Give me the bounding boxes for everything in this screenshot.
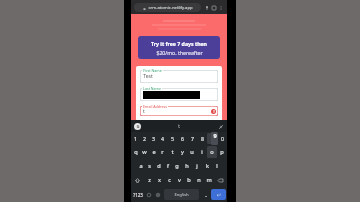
- button[interactable]: j: [192, 160, 202, 172]
- staticText: 9: [211, 135, 214, 142]
- button[interactable]: Shift: [131, 173, 144, 187]
- staticText: 6: [181, 135, 184, 142]
- staticText: q: [134, 148, 138, 156]
- staticText: t: [171, 148, 174, 156]
- staticText: l: [216, 162, 218, 170]
- button[interactable]: m: [204, 174, 214, 186]
- button[interactable]: Settings: [217, 123, 224, 130]
- staticText: 9: [213, 132, 217, 140]
- staticText: b: [187, 176, 191, 184]
- button[interactable]: Test: [140, 70, 218, 83]
- staticText: h: [185, 162, 189, 170]
- button[interactable]: 9: [207, 133, 217, 144]
- button[interactable]: x: [154, 174, 164, 186]
- button[interactable]: Voice search: [203, 4, 210, 11]
- button[interactable]: .: [201, 189, 210, 200]
- staticText: Test: [143, 73, 153, 80]
- button[interactable]: 5: [167, 133, 177, 144]
- staticText: f: [167, 162, 169, 170]
- button[interactable]: Sticker: [153, 189, 162, 200]
- staticText: j: [196, 162, 198, 170]
- button[interactable]: 2: [140, 133, 149, 144]
- button[interactable]: d: [154, 160, 163, 172]
- button[interactable]: t: [167, 146, 177, 158]
- staticText: Try it free 7 days then: [151, 40, 207, 47]
- staticText: m: [206, 176, 212, 184]
- button[interactable]: p: [217, 146, 227, 158]
- button[interactable]: Tabs: [210, 4, 217, 11]
- button[interactable]: 6: [177, 133, 187, 144]
- button[interactable]: ?123: [131, 189, 144, 200]
- staticText: e: [152, 148, 156, 156]
- staticText: x: [158, 176, 161, 184]
- button[interactable]: 1: [131, 133, 140, 144]
- staticText: crm-atomic.netlify.app: [148, 5, 193, 11]
- button[interactable]: o: [207, 146, 217, 158]
- staticText: 4: [161, 135, 164, 142]
- button[interactable]: g: [172, 160, 182, 172]
- staticText: v: [178, 176, 181, 184]
- button[interactable]: Gboard menu: [134, 123, 141, 130]
- button[interactable]: l: [212, 160, 222, 172]
- staticText: 0: [221, 135, 224, 142]
- button[interactable]: t: [140, 106, 218, 116]
- staticText: u: [190, 148, 194, 156]
- staticText: p: [220, 148, 224, 156]
- button[interactable]: y: [177, 146, 187, 158]
- button[interactable]: e: [149, 146, 158, 158]
- staticText: k: [206, 162, 209, 170]
- button[interactable]: Enter: [211, 189, 226, 200]
- staticText: Last Name: [143, 86, 161, 91]
- staticText: r: [161, 148, 164, 156]
- button[interactable]: b: [184, 174, 194, 186]
- staticText: !: [213, 109, 215, 114]
- button[interactable]: v: [174, 174, 184, 186]
- button[interactable]: [140, 88, 218, 101]
- button[interactable]: 4: [158, 133, 167, 144]
- button[interactable]: u: [187, 146, 197, 158]
- staticText: 7: [191, 135, 194, 142]
- staticText: t: [178, 123, 180, 129]
- button[interactable]: 8: [197, 133, 207, 144]
- button[interactable]: Backspace: [214, 173, 227, 187]
- staticText: English: [174, 192, 189, 198]
- button[interactable]: More options: [217, 4, 224, 11]
- staticText: $20/mo. thereafter: [156, 49, 203, 56]
- button[interactable]: Try it free 7 days then: [138, 36, 220, 59]
- button[interactable]: crm-atomic.netlify.app: [134, 3, 201, 12]
- button[interactable]: 7: [187, 133, 197, 144]
- button[interactable]: English: [164, 189, 199, 200]
- staticText: t: [143, 108, 145, 115]
- button[interactable]: 0: [217, 133, 227, 144]
- button[interactable]: h: [182, 160, 192, 172]
- button[interactable]: q: [131, 146, 140, 158]
- staticText: 1: [134, 135, 137, 142]
- staticText: c: [168, 176, 171, 184]
- button[interactable]: w: [140, 146, 149, 158]
- staticText: y: [181, 148, 184, 156]
- staticText: Email Address: [143, 104, 167, 109]
- staticText: 8: [201, 135, 204, 142]
- button[interactable]: f: [163, 160, 172, 172]
- staticText: o: [210, 148, 214, 156]
- staticText: s: [148, 162, 151, 170]
- staticText: 5: [171, 135, 174, 142]
- button[interactable]: i: [197, 146, 207, 158]
- button[interactable]: s: [145, 160, 154, 172]
- button[interactable]: k: [202, 160, 212, 172]
- staticText: w: [142, 148, 147, 156]
- button[interactable]: c: [164, 174, 174, 186]
- staticText: n: [197, 176, 201, 184]
- button[interactable]: 3: [149, 133, 158, 144]
- staticText: 2: [143, 135, 146, 142]
- staticText: a: [139, 162, 143, 170]
- button[interactable]: a: [136, 160, 145, 172]
- staticText: ?123: [133, 192, 143, 198]
- staticText: 3: [152, 135, 155, 142]
- button[interactable]: z: [144, 174, 154, 186]
- staticText: z: [148, 176, 151, 184]
- button[interactable]: n: [194, 174, 204, 186]
- button[interactable]: Emoji: [144, 189, 153, 200]
- button[interactable]: r: [158, 146, 167, 158]
- staticText: G: [136, 124, 140, 130]
